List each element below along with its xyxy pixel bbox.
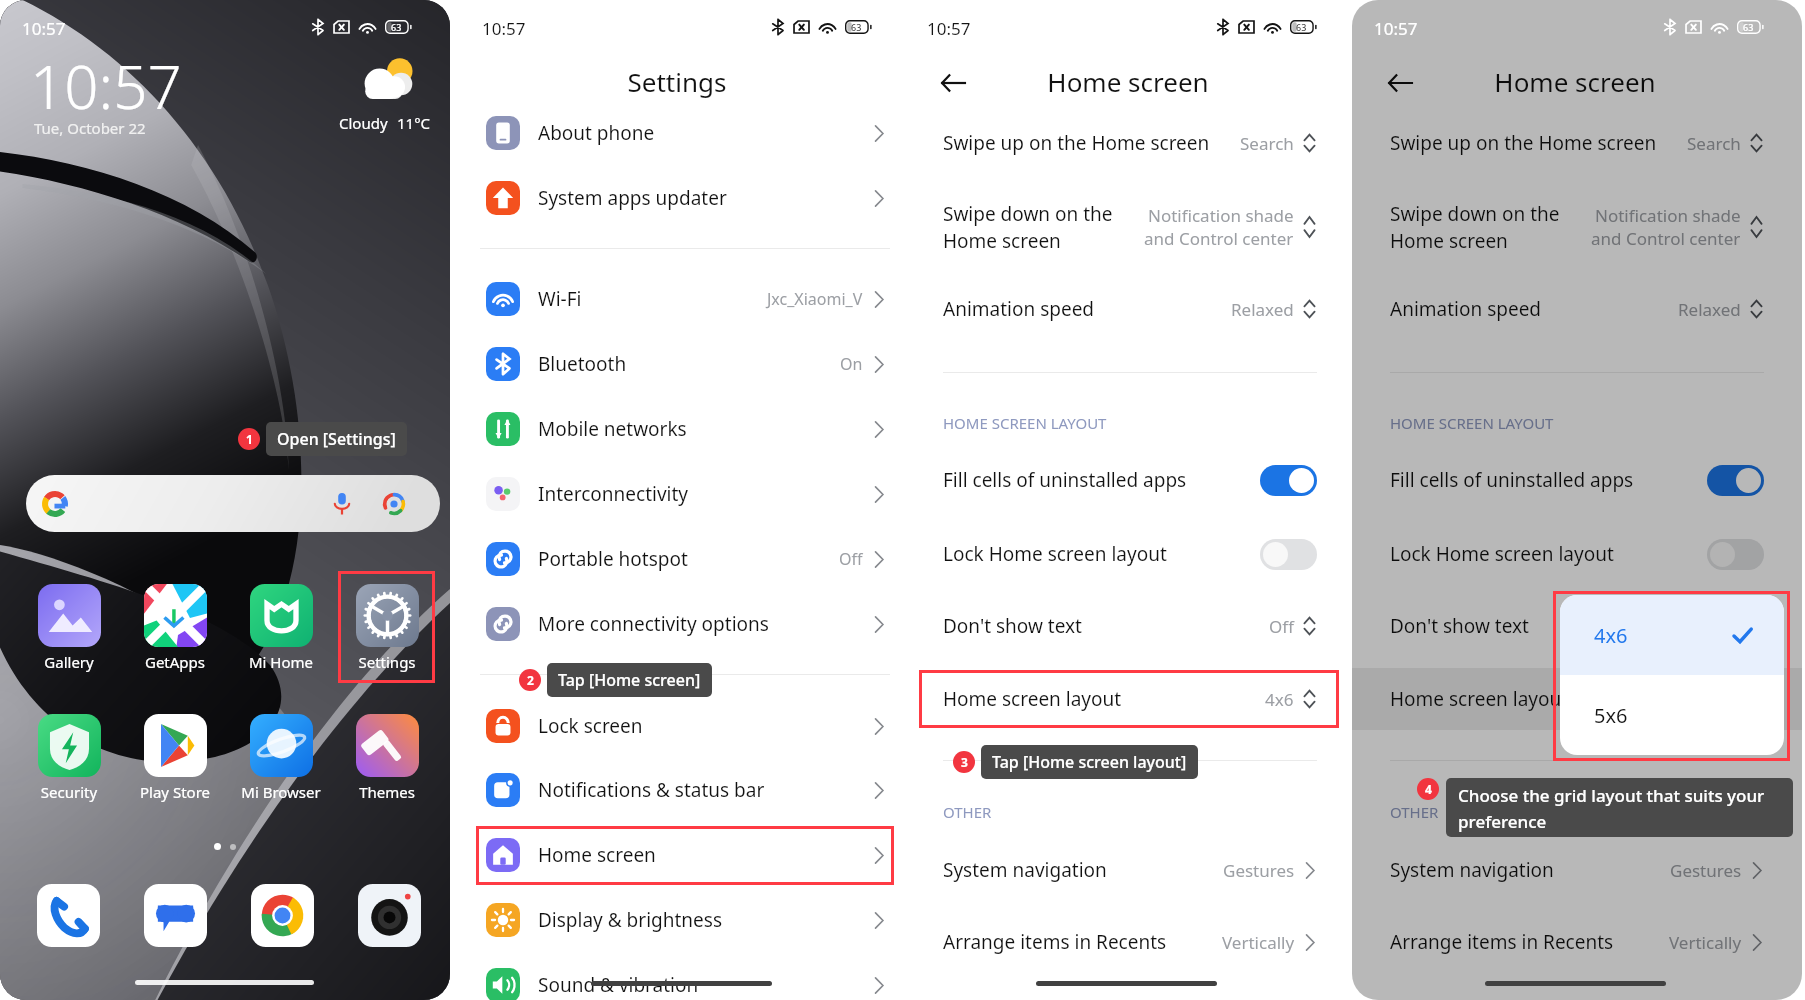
staticText: Fill cells of uninstalled apps xyxy=(943,467,1187,493)
staticText: Relaxed xyxy=(1231,298,1294,321)
staticText: Gallery xyxy=(16,652,122,672)
button[interactable]: Mi Home xyxy=(228,584,334,672)
staticText: Notifications & status bar xyxy=(538,777,765,803)
staticText: Relaxed xyxy=(1678,298,1741,321)
button[interactable]: Phone xyxy=(37,884,100,947)
staticText: Notification shade xyxy=(1148,204,1294,227)
staticText: Gestures xyxy=(1223,859,1295,882)
button[interactable]: Camera xyxy=(358,884,421,947)
button[interactable]: Fill cells of uninstalled apps xyxy=(905,451,1355,509)
staticText: Tue, October 22 xyxy=(34,118,146,138)
button[interactable]: Interconnectivity xyxy=(460,464,910,524)
staticText: Search xyxy=(1687,132,1741,155)
button[interactable]: Arrange items in Recents xyxy=(905,913,1355,971)
staticText: On xyxy=(840,353,863,375)
staticText: Fill cells of uninstalled apps xyxy=(1390,467,1634,493)
button[interactable]: Swipe down on the Home screen xyxy=(905,191,1355,263)
button[interactable]: Wi-Fi xyxy=(460,269,910,329)
button[interactable]: Voice search xyxy=(324,486,360,522)
button[interactable]: Arrange items in Recents xyxy=(1352,913,1802,971)
staticText: Home screen xyxy=(905,64,1353,99)
button[interactable]: Themes xyxy=(334,714,440,802)
staticText: Off xyxy=(1269,615,1294,638)
staticText: 63 xyxy=(1296,21,1307,33)
button[interactable]: Mi Browser xyxy=(228,714,334,802)
button[interactable]: Animation speed xyxy=(905,280,1355,338)
staticText: Lock screen xyxy=(538,713,643,739)
button[interactable]: Gallery xyxy=(16,584,122,672)
button[interactable]: Lock screen xyxy=(460,696,910,756)
button[interactable]: Back xyxy=(940,70,966,96)
staticText: Display & brightness xyxy=(538,907,722,933)
button[interactable]: Don't show text xyxy=(905,597,1355,655)
staticText: GetApps xyxy=(122,652,228,672)
button[interactable]: Swipe up on the Home screen xyxy=(905,114,1355,172)
button[interactable]: About phone xyxy=(460,103,910,163)
staticText: Mi Browser xyxy=(228,782,334,802)
staticText: Open [Settings] xyxy=(277,428,396,450)
button[interactable]: Play Store xyxy=(122,714,228,802)
staticText: Vertically xyxy=(1669,931,1742,954)
button[interactable]: Settings xyxy=(334,584,440,672)
staticText: System navigation xyxy=(943,857,1107,883)
button[interactable]: System navigation xyxy=(905,841,1355,899)
button[interactable]: Fill cells of uninstalled apps xyxy=(1352,451,1802,509)
staticText: HOME SCREEN LAYOUT xyxy=(1390,413,1554,433)
staticText: Animation speed xyxy=(1390,296,1542,322)
button[interactable]: Home screen xyxy=(460,825,910,885)
staticText: 10:57 xyxy=(22,17,66,40)
button[interactable]: Lock Home screen layout xyxy=(905,525,1355,583)
button[interactable]: Messages xyxy=(144,884,207,947)
staticText: Security xyxy=(16,782,122,802)
staticText: Arrange items in Recents xyxy=(943,929,1167,955)
staticText: OTHER xyxy=(943,802,992,822)
staticText: About phone xyxy=(538,120,655,146)
button[interactable]: Sound & vibration xyxy=(460,955,910,1000)
staticText: Vertically xyxy=(1222,931,1295,954)
button[interactable]: System apps updater xyxy=(460,168,910,228)
button[interactable]: 4x6 xyxy=(1560,595,1784,675)
staticText: 11°C xyxy=(397,113,431,133)
staticText: Jxc_Xiaomi_V xyxy=(767,288,863,310)
staticText: Settings xyxy=(334,652,440,672)
button[interactable]: Notifications & status bar xyxy=(460,760,910,820)
button[interactable]: Lock Home screen layout xyxy=(1352,525,1802,583)
button[interactable]: Display & brightness xyxy=(460,890,910,950)
button[interactable]: Animation speed xyxy=(1352,280,1802,338)
staticText: 10:57 xyxy=(927,17,971,40)
staticText: Home screen xyxy=(1352,64,1800,99)
staticText: Wi-Fi xyxy=(538,286,582,312)
staticText: Portable hotspot xyxy=(538,546,688,572)
staticText: Play Store xyxy=(122,782,228,802)
staticText: Mobile networks xyxy=(538,416,687,442)
button[interactable]: Home screen layout xyxy=(1352,670,1802,728)
staticText: and Control center xyxy=(1144,227,1294,250)
button[interactable]: System navigation xyxy=(1352,841,1802,899)
button[interactable]: Portable hotspot xyxy=(460,529,910,589)
button[interactable]: Chrome xyxy=(251,884,314,947)
button[interactable]: Security xyxy=(16,714,122,802)
button[interactable]: Swipe down on the Home screen xyxy=(1352,191,1802,263)
button[interactable]: Swipe up on the Home screen xyxy=(1352,114,1802,172)
button[interactable]: Home screen layout xyxy=(905,670,1355,728)
button[interactable]: Back xyxy=(1387,70,1413,96)
staticText: 4 xyxy=(1425,781,1432,797)
staticText: 4x6 xyxy=(1265,688,1294,711)
button[interactable]: GetApps xyxy=(122,584,228,672)
staticText: 5x6 xyxy=(1594,702,1628,729)
staticText: Tap [Home screen layout] xyxy=(992,751,1187,773)
button[interactable]: Mobile networks xyxy=(460,399,910,459)
button[interactable]: Google Lens xyxy=(376,486,412,522)
staticText: Don't show text xyxy=(1390,613,1529,639)
staticText: Home screen xyxy=(538,842,656,868)
button[interactable]: More connectivity options xyxy=(460,594,910,654)
button[interactable]: Bluetooth xyxy=(460,334,910,394)
button[interactable]: Don't show text xyxy=(1352,597,1802,655)
button[interactable]: 5x6 xyxy=(1560,675,1784,755)
staticText: Mi Home xyxy=(228,652,334,672)
staticText: Swipe down on the Home screen xyxy=(943,201,1113,254)
staticText: Settings xyxy=(452,64,902,99)
staticText: Bluetooth xyxy=(538,351,627,377)
button[interactable]: Google search xyxy=(26,475,440,532)
